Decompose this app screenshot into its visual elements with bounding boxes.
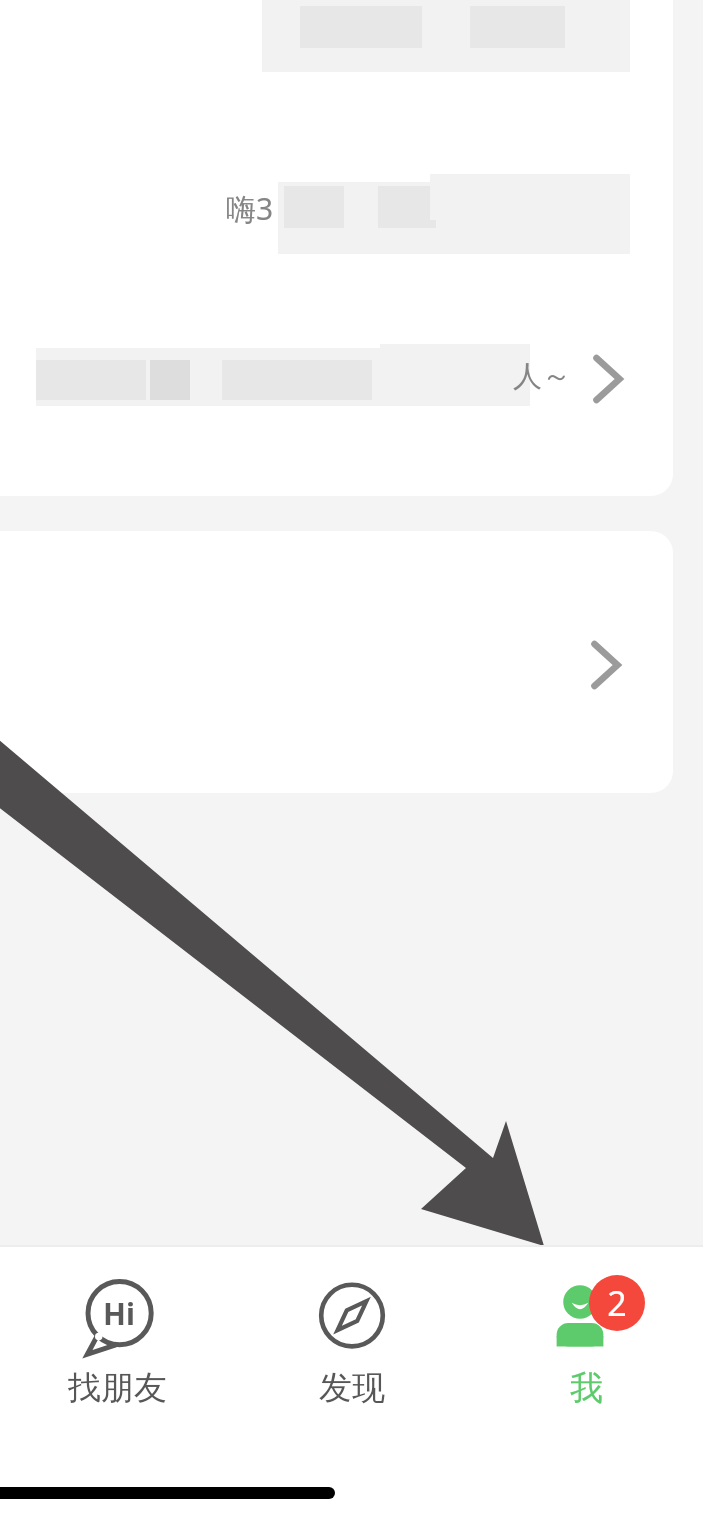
staticText: 我 xyxy=(570,1367,603,1409)
staticText: Hi xyxy=(103,1293,135,1334)
staticText: 嗨3 xyxy=(226,188,274,229)
button[interactable]: Find friends xyxy=(0,1275,235,1409)
button[interactable]: Me, 2 unread xyxy=(469,1275,703,1409)
staticText: 发现 xyxy=(319,1367,385,1409)
staticText: 找朋友 xyxy=(68,1367,167,1409)
staticText: 2 xyxy=(607,1280,627,1326)
button[interactable]: Discover xyxy=(235,1275,469,1409)
staticText: 人～ xyxy=(513,358,571,395)
